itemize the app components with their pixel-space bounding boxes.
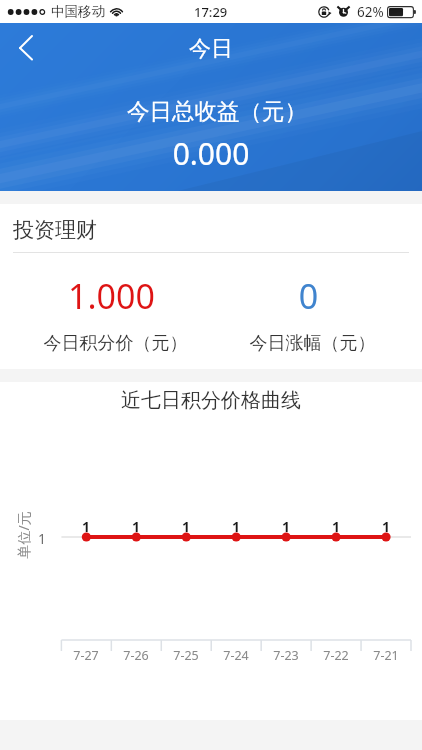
staticText: 1 — [211, 517, 261, 536]
staticText: 62% — [357, 3, 384, 21]
staticText: 17:29 — [194, 3, 228, 21]
staticText: 1 — [61, 517, 111, 536]
staticText: 今日涨幅（元） — [214, 332, 411, 355]
staticText: 7-22 — [311, 647, 361, 664]
staticText: 1 — [30, 529, 46, 548]
staticText: 7-24 — [211, 647, 261, 664]
staticText: 今日积分价（元） — [17, 332, 214, 355]
staticText: 7-23 — [261, 647, 311, 664]
staticText: 1 — [361, 517, 411, 536]
staticText: 今日总收益（元） — [6, 97, 422, 125]
staticText: 今日 — [0, 35, 422, 63]
staticText: 1 — [111, 517, 161, 536]
staticText: 7-25 — [161, 647, 211, 664]
staticText: 单位/元 — [13, 510, 32, 558]
staticText: 0.000 — [0, 133, 422, 174]
staticText: 中国移动 — [51, 3, 105, 20]
staticText: 7-26 — [111, 647, 161, 664]
staticText: 近七日积分价格曲线 — [0, 388, 422, 413]
staticText: 1 — [311, 517, 361, 536]
staticText: 投资理财 — [13, 217, 97, 243]
staticText: 7-21 — [361, 647, 411, 664]
staticText: 1.000 — [13, 273, 210, 319]
staticText: 0 — [210, 273, 407, 319]
button[interactable]: Back — [4, 23, 48, 67]
staticText: 1 — [161, 517, 211, 536]
staticText: 7-27 — [61, 647, 111, 664]
staticText: 1 — [261, 517, 311, 536]
